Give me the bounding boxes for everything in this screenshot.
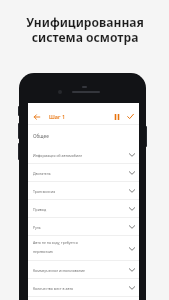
staticText: Шаг 1 bbox=[49, 113, 66, 121]
staticText: Руль bbox=[33, 225, 129, 230]
button[interactable]: Pause bbox=[111, 111, 122, 122]
staticText: Унифицированная система осмотра bbox=[26, 14, 144, 46]
button[interactable]: Привод bbox=[28, 200, 139, 218]
staticText: Двигатель bbox=[33, 171, 129, 176]
staticText: Общее bbox=[33, 133, 49, 139]
staticText: Коммерческое использование bbox=[33, 268, 129, 273]
button[interactable]: Руль bbox=[28, 218, 139, 236]
staticText: Привод bbox=[33, 207, 129, 212]
button[interactable]: Done bbox=[125, 111, 136, 122]
staticText: Авто не на ходу, требуется перевозчик bbox=[33, 240, 129, 254]
button[interactable]: Трансмиссия bbox=[28, 182, 139, 200]
staticText: Трансмиссия bbox=[33, 189, 129, 194]
button[interactable]: Двигатель bbox=[28, 164, 139, 182]
button[interactable]: Back bbox=[31, 111, 42, 122]
button[interactable]: Авто не на ходу, требуется перевозчик bbox=[28, 236, 139, 261]
staticText: Информация об автомобиле bbox=[33, 153, 129, 158]
button[interactable]: Количество мест в авто bbox=[28, 279, 139, 297]
button[interactable]: Коммерческое использование bbox=[28, 261, 139, 279]
button[interactable]: Информация об автомобиле bbox=[28, 146, 139, 164]
staticText: Количество мест в авто bbox=[33, 286, 129, 291]
